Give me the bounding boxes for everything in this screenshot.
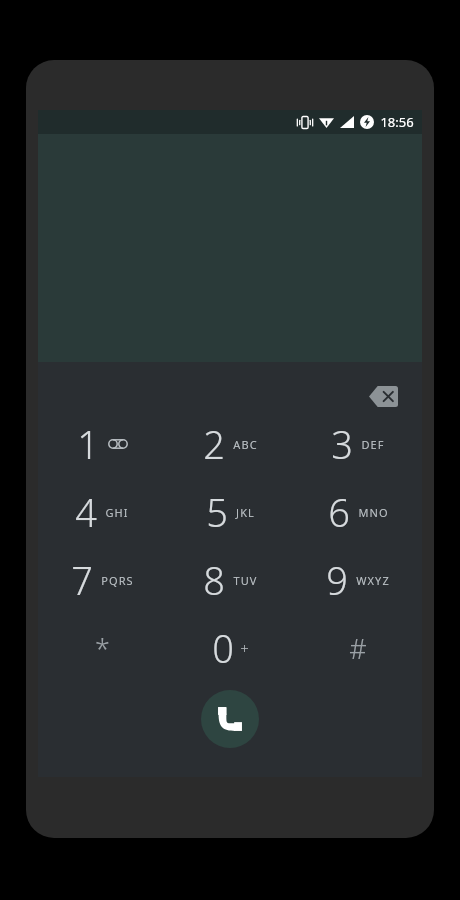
staticText: JKL xyxy=(236,505,255,520)
button[interactable]: Call xyxy=(201,690,259,748)
staticText: ABC xyxy=(233,437,258,452)
staticText: 0 xyxy=(212,622,234,674)
button[interactable]: 8 xyxy=(166,546,294,614)
staticText: 3 xyxy=(331,418,353,470)
button[interactable]: 5 xyxy=(166,478,294,546)
staticText: DEF xyxy=(361,437,385,452)
button[interactable]: # xyxy=(294,614,422,682)
staticText: 6 xyxy=(328,486,350,538)
staticText: MNO xyxy=(358,505,389,520)
button[interactable]: 1 xyxy=(38,410,166,478)
staticText: 18:56 xyxy=(380,113,414,131)
button[interactable]: 4 xyxy=(38,478,166,546)
staticText: + xyxy=(240,638,249,658)
button[interactable]: * xyxy=(38,614,166,682)
staticText: 9 xyxy=(326,554,348,606)
button[interactable]: 7 xyxy=(38,546,166,614)
button[interactable]: 3 xyxy=(294,410,422,478)
staticText: GHI xyxy=(105,505,129,520)
staticText: 2 xyxy=(203,418,225,470)
staticText: # xyxy=(349,630,367,667)
button[interactable]: Delete xyxy=(356,374,410,418)
staticText: 4 xyxy=(75,486,97,538)
staticText: WXYZ xyxy=(356,573,390,588)
staticText: 1 xyxy=(77,418,99,470)
button[interactable]: 9 xyxy=(294,546,422,614)
staticText: 5 xyxy=(206,486,228,538)
staticText: TUV xyxy=(233,573,258,588)
staticText: PQRS xyxy=(101,573,134,588)
button[interactable]: 0 xyxy=(166,614,294,682)
button[interactable]: 6 xyxy=(294,478,422,546)
staticText: * xyxy=(95,630,110,667)
staticText: 8 xyxy=(203,554,225,606)
button[interactable]: 2 xyxy=(166,410,294,478)
staticText: 7 xyxy=(71,554,93,606)
